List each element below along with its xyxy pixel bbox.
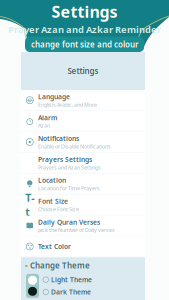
staticText: Prayer Azan and Azkar Reminder — [8, 23, 161, 36]
staticText: Text Color — [38, 242, 71, 251]
staticText: Choose Font Size — [38, 206, 79, 213]
staticText: Settings — [51, 1, 117, 22]
staticText: Light Theme — [51, 275, 92, 284]
button[interactable]: Prayers Settings — [21, 153, 145, 174]
staticText: pick the Number of Daily verses — [38, 226, 115, 234]
staticText: Dark Theme — [51, 288, 91, 296]
staticText: Tt — [25, 190, 34, 219]
button[interactable]: Light Theme — [43, 275, 92, 284]
button[interactable]: Alarm — [21, 111, 145, 132]
button[interactable]: Dark Theme — [43, 288, 91, 296]
staticText: Prayers and Azan Settings — [38, 164, 101, 171]
button[interactable]: Daily Quran Verses — [21, 215, 145, 236]
staticText: Settings — [67, 66, 98, 76]
staticText: Azan — [38, 122, 50, 129]
staticText: Notifications — [38, 134, 79, 143]
button[interactable]: Notifications — [21, 132, 145, 153]
button[interactable]: Tt — [21, 194, 145, 215]
staticText: Font Size — [38, 197, 68, 206]
staticText: Prayers Settings — [38, 155, 92, 164]
button[interactable]: Text Color — [21, 236, 145, 257]
staticText: Enable or Disable Notifications — [38, 143, 111, 150]
button[interactable]: Location — [21, 174, 145, 194]
staticText: English, Arabic, and More — [38, 101, 97, 108]
staticText: - Change Theme — [25, 260, 90, 271]
staticText: Location — [38, 176, 66, 185]
staticText: Alarm — [38, 113, 57, 122]
staticText: Daily Quran Verses — [38, 218, 100, 226]
button[interactable]: Language — [21, 90, 145, 111]
staticText: Location for Time Prayers — [38, 185, 100, 192]
staticText: change font size and colour — [31, 39, 138, 50]
staticText: Language — [38, 92, 70, 101]
